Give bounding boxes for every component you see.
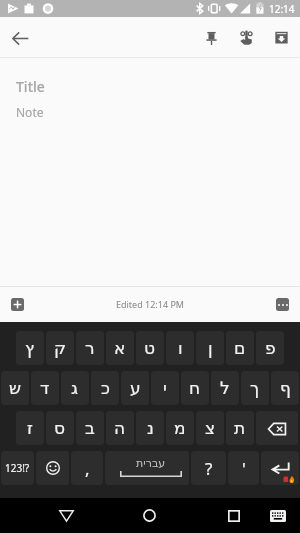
staticText: ל [220,378,230,398]
staticText: עברית [136,457,166,470]
staticText: ן [208,338,213,358]
staticText: ח [189,378,201,398]
button[interactable]: ס [46,411,74,445]
button[interactable]: Space [105,451,189,485]
button[interactable]: פ [256,331,284,365]
staticText: ץ [25,338,35,358]
button[interactable]: ב [76,411,104,445]
button[interactable]: א [106,331,134,365]
button[interactable]: Reminder [232,23,261,52]
button[interactable]: Backspace [256,411,298,445]
button[interactable]: ת [226,411,254,445]
staticText: נ [147,418,154,438]
staticText: ד [40,378,50,398]
staticText: ב [85,418,95,438]
button[interactable]: י [151,371,179,405]
staticText: ר [85,338,95,358]
staticText: מ [174,418,186,438]
button[interactable]: נ [136,411,164,445]
staticText: ג [71,378,79,398]
button[interactable]: ם [226,331,254,365]
button[interactable]: ? [191,451,226,485]
staticText: 123!? [5,461,30,475]
staticText: ' [242,457,246,480]
staticText: ת [234,418,246,438]
button[interactable]: Archive [267,23,296,52]
button[interactable]: ץ [16,331,44,365]
staticText: צ [205,418,216,438]
staticText: ק [54,338,67,358]
button[interactable]: Recent apps [216,498,252,533]
button[interactable]: כ [91,371,119,405]
staticText: Note [16,104,44,120]
button[interactable]: ח [181,371,209,405]
staticText: א [114,338,126,358]
button[interactable]: ה [106,411,134,445]
staticText: Edited 12:14 PM [116,298,185,310]
button[interactable]: ו [166,331,194,365]
button[interactable]: מ [166,411,194,445]
staticText: ש [9,378,22,398]
button[interactable]: צ [196,411,224,445]
button[interactable]: ' [228,451,259,485]
button[interactable]: Pin note [197,23,226,52]
staticText: ט [144,338,156,358]
button[interactable]: ל [211,371,239,405]
button[interactable]: ז [16,411,44,445]
button[interactable]: ף [271,371,299,405]
button[interactable]: ע [121,371,149,405]
staticText: ? [205,457,213,480]
button[interactable]: Navigate up [5,23,35,53]
staticText: כ [101,378,110,398]
button[interactable]: Emoji [36,451,69,485]
staticText: ם [234,338,246,358]
staticText: י [163,378,167,398]
button[interactable]: More options [276,298,289,311]
button[interactable]: Change keyboard [266,504,290,528]
staticText: ך [250,378,260,398]
staticText: ו [178,338,183,358]
button[interactable]: ך [241,371,269,405]
staticText: פ [265,338,276,358]
button[interactable]: Add [11,298,24,311]
button[interactable]: ק [46,331,74,365]
button[interactable]: , [71,451,103,485]
staticText: ף [280,378,291,398]
button[interactable]: Home [131,498,167,533]
button[interactable]: ט [136,331,164,365]
button[interactable]: Back [48,498,84,533]
button[interactable]: ר [76,331,104,365]
staticText: ע [130,378,141,398]
button[interactable]: ש [1,371,29,405]
staticText: Title [16,77,45,96]
staticText: ס [54,418,66,438]
button[interactable]: ד [31,371,59,405]
button[interactable]: 123!? [1,451,34,485]
staticText: ה [114,418,126,438]
staticText: , [85,457,90,480]
button[interactable]: ג [61,371,89,405]
button[interactable]: Enter [261,451,299,485]
button[interactable]: ן [196,331,224,365]
staticText: 12:14 [269,2,295,16]
staticText: ז [27,418,33,438]
